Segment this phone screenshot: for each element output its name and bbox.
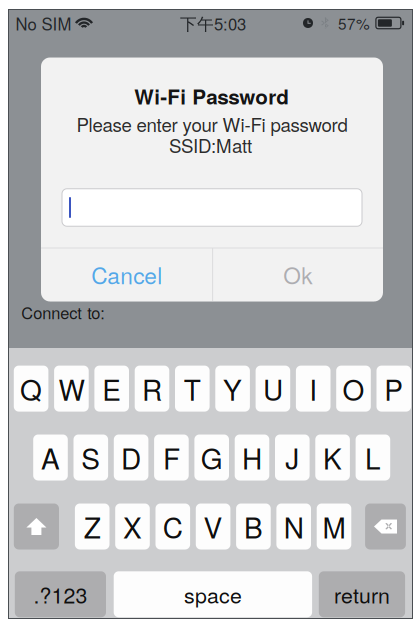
- button[interactable]: K: [315, 434, 350, 480]
- button[interactable]: A: [33, 434, 68, 480]
- button[interactable]: return: [319, 571, 405, 617]
- button[interactable]: E: [94, 366, 129, 412]
- button[interactable]: M: [317, 503, 351, 549]
- staticText: Cancel: [91, 258, 162, 291]
- button[interactable]: P: [376, 366, 411, 412]
- staticText: A: [41, 437, 60, 478]
- button[interactable]: Y: [215, 366, 250, 412]
- staticText: Y: [223, 369, 242, 409]
- button[interactable]: N: [276, 503, 311, 549]
- staticText: B: [244, 506, 263, 547]
- button[interactable]: C: [155, 503, 190, 549]
- button[interactable]: F: [154, 434, 189, 480]
- staticText: 下午5:03: [180, 11, 246, 35]
- staticText: Connect to:: [21, 300, 105, 324]
- button[interactable]: Ok: [213, 248, 383, 301]
- button[interactable]: Cancel: [41, 248, 212, 301]
- staticText: Ok: [283, 258, 312, 291]
- staticText: T: [184, 369, 201, 409]
- button[interactable]: U: [256, 366, 290, 412]
- button[interactable]: Z: [75, 503, 109, 549]
- staticText: V: [204, 506, 223, 547]
- button[interactable]: T: [175, 366, 210, 412]
- staticText: H: [242, 437, 262, 478]
- staticText: S: [81, 437, 100, 478]
- staticText: J: [285, 437, 299, 478]
- staticText: Z: [84, 506, 101, 547]
- staticText: F: [163, 437, 180, 478]
- staticText: N: [284, 506, 304, 547]
- staticText: E: [102, 369, 121, 409]
- button[interactable]: S: [73, 434, 108, 480]
- button[interactable]: O: [336, 366, 371, 412]
- staticText: Wi-Fi Password: [134, 81, 289, 111]
- button[interactable]: Numbers: [15, 571, 106, 617]
- staticText: X: [123, 506, 142, 547]
- staticText: I: [309, 369, 317, 409]
- staticText: M: [322, 506, 345, 547]
- staticText: W: [58, 369, 84, 409]
- button[interactable]: R: [135, 366, 169, 412]
- staticText: Please enter your Wi-Fi password: [76, 111, 347, 137]
- button[interactable]: B: [236, 503, 271, 549]
- button[interactable]: D: [114, 434, 148, 480]
- staticText: space: [184, 579, 242, 609]
- button[interactable]: J: [275, 434, 310, 480]
- staticText: return: [334, 579, 390, 609]
- staticText: D: [121, 437, 141, 478]
- button[interactable]: L: [356, 434, 390, 480]
- button[interactable]: G: [194, 434, 229, 480]
- button[interactable]: Shift: [14, 503, 59, 549]
- staticText: .?123: [33, 579, 87, 609]
- staticText: U: [263, 369, 283, 409]
- button[interactable]: Q: [14, 366, 48, 412]
- button[interactable]: H: [235, 434, 269, 480]
- staticText: SSID:Matt: [169, 132, 252, 158]
- staticText: G: [201, 437, 223, 478]
- staticText: K: [323, 437, 342, 478]
- staticText: 57%: [338, 12, 370, 34]
- button[interactable]: I: [296, 366, 330, 412]
- staticText: P: [384, 369, 403, 409]
- button[interactable]: space: [114, 571, 312, 617]
- staticText: No SIM: [15, 11, 71, 35]
- staticText: L: [365, 437, 381, 478]
- button[interactable]: V: [196, 503, 230, 549]
- button[interactable]: W: [54, 366, 89, 412]
- staticText: R: [142, 369, 162, 409]
- staticText: C: [163, 506, 183, 547]
- staticText: Q: [20, 369, 42, 409]
- button[interactable]: X: [115, 503, 150, 549]
- button[interactable]: Delete: [365, 503, 406, 549]
- staticText: O: [342, 369, 364, 409]
